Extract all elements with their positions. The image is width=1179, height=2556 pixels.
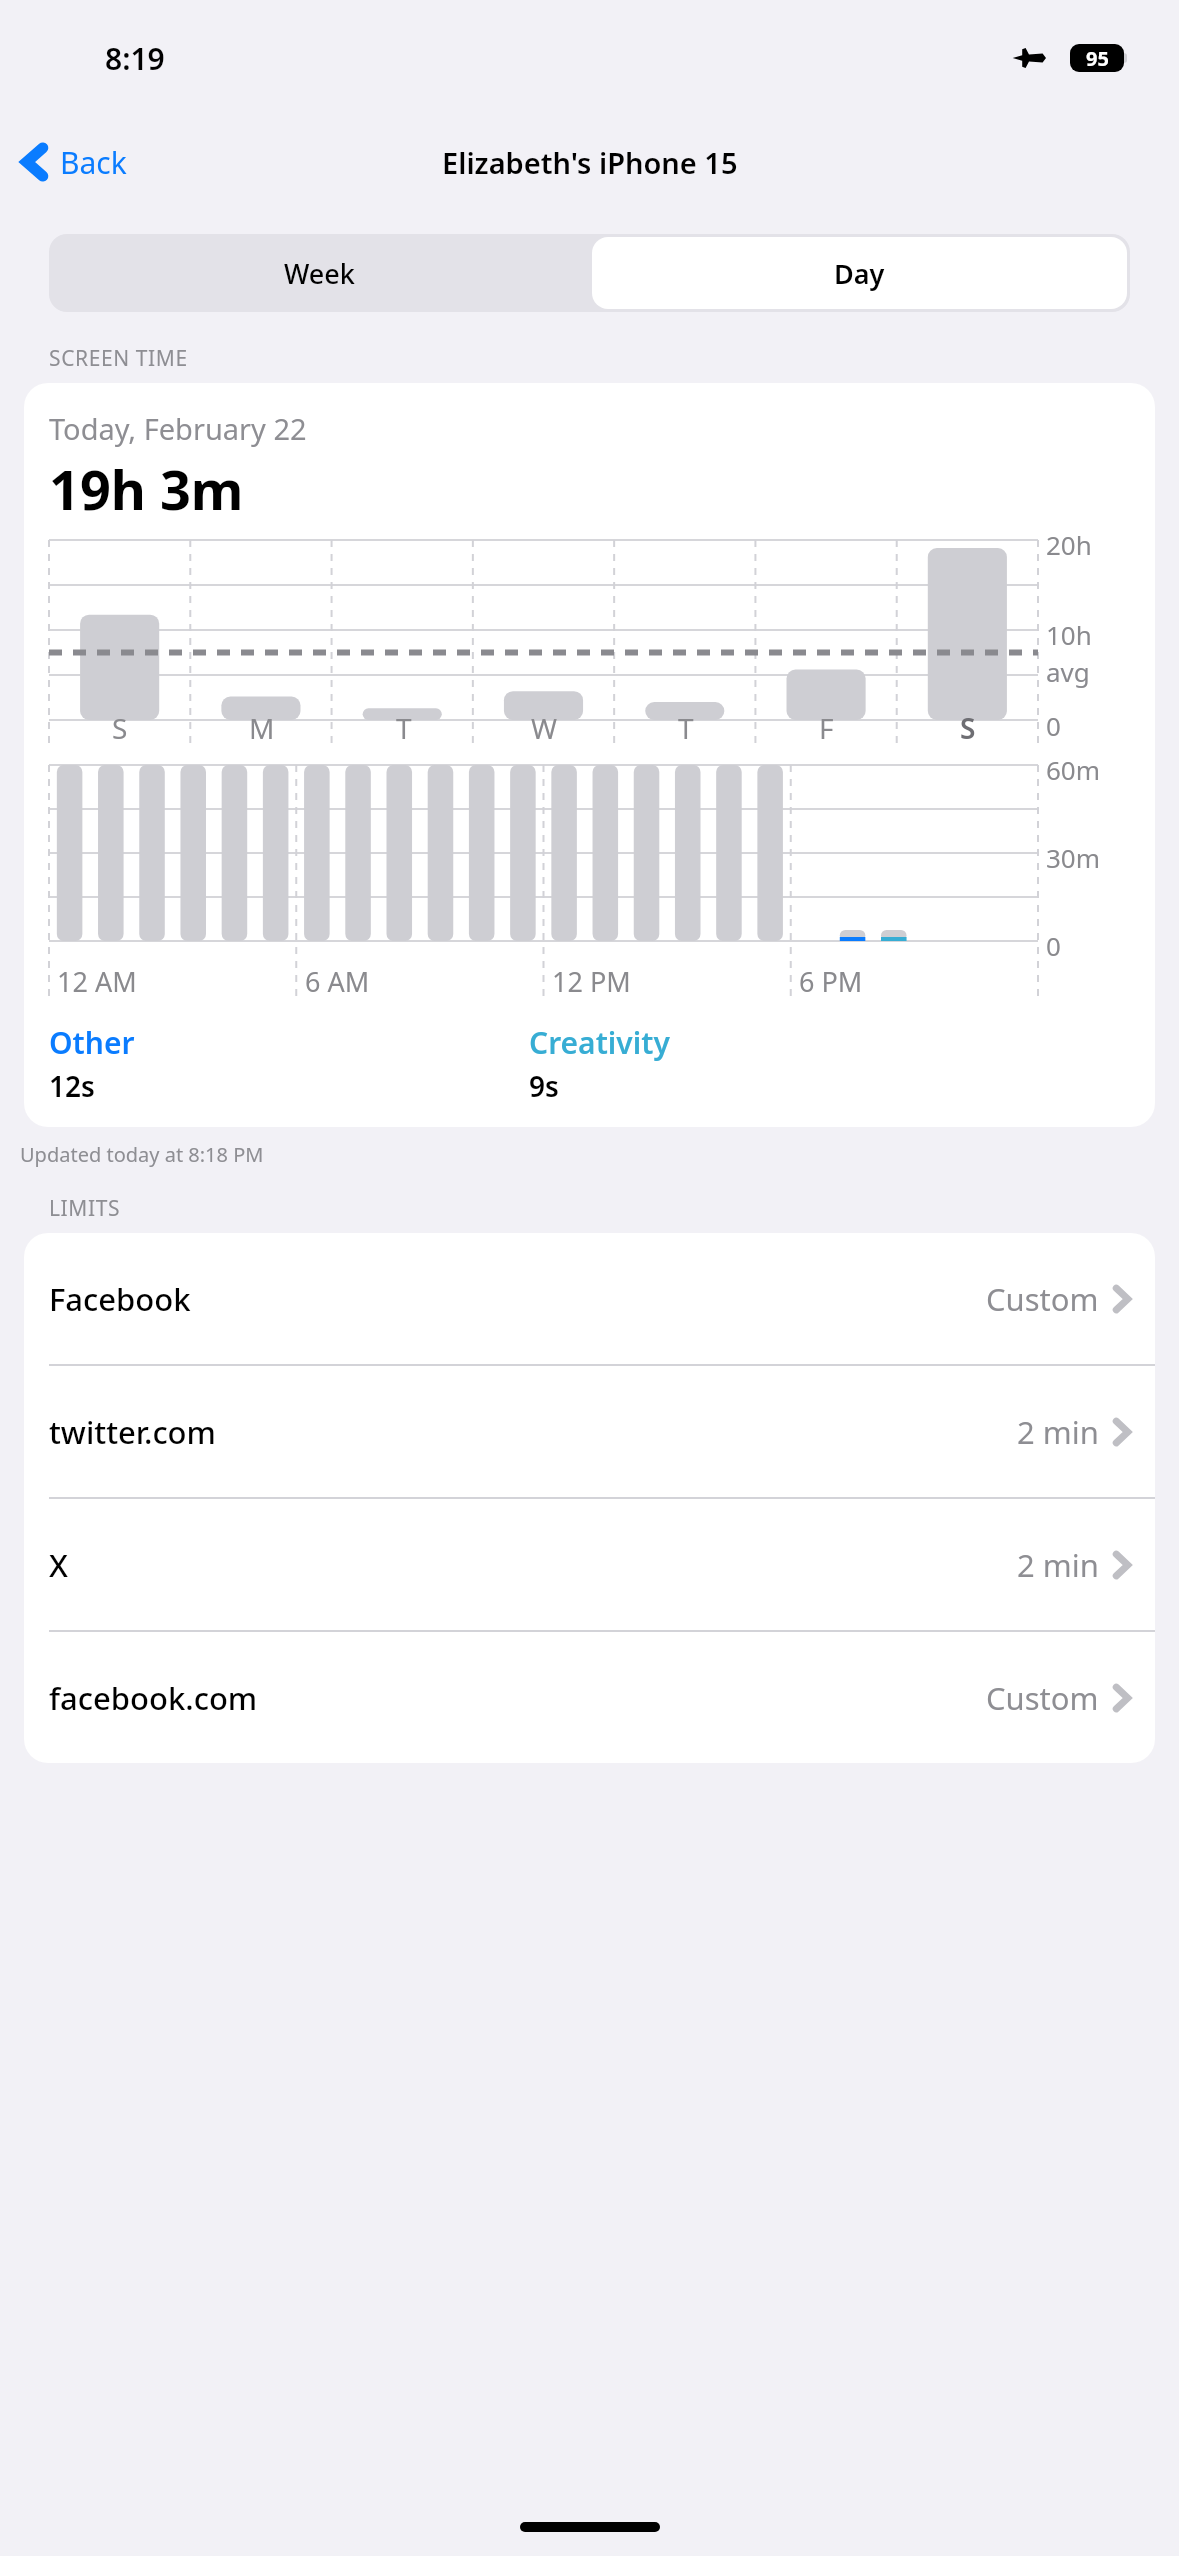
staticText: S xyxy=(112,709,128,747)
staticText: 30m xyxy=(1046,840,1101,875)
staticText: 9s xyxy=(529,1067,559,1105)
staticText: Updated today at 8:18 PM xyxy=(20,1141,264,1168)
staticText: 6 AM xyxy=(305,963,370,1000)
staticText: 2 min xyxy=(1017,1544,1099,1586)
button[interactable]: Facebook xyxy=(24,1233,1155,1364)
staticText: Day xyxy=(834,255,885,292)
staticText: Other xyxy=(49,1022,135,1063)
staticText: X xyxy=(49,1544,68,1586)
staticText: 12s xyxy=(49,1067,95,1105)
staticText: W xyxy=(531,709,558,747)
staticText: S xyxy=(960,709,976,747)
staticText: Custom xyxy=(986,1278,1099,1320)
staticText: twitter.com xyxy=(49,1411,216,1453)
staticText: facebook.com xyxy=(49,1677,258,1719)
button[interactable]: Day xyxy=(592,237,1127,309)
staticText: Creativity xyxy=(529,1022,670,1063)
staticText: 0 xyxy=(1046,708,1061,743)
staticText: 6 PM xyxy=(799,963,863,1000)
staticText: 20h xyxy=(1046,527,1092,562)
staticText: LIMITS xyxy=(49,1194,121,1223)
staticText: 12 PM xyxy=(552,963,631,1000)
button[interactable]: X xyxy=(24,1499,1155,1630)
button[interactable]: twitter.com xyxy=(24,1366,1155,1497)
staticText: avg xyxy=(1046,654,1090,689)
staticText: Back xyxy=(60,142,127,183)
staticText: Elizabeth's iPhone 15 xyxy=(442,143,738,182)
staticText: 95 xyxy=(1086,45,1109,72)
staticText: Facebook xyxy=(49,1278,191,1320)
staticText: 10h xyxy=(1046,617,1092,652)
staticText: SCREEN TIME xyxy=(49,344,188,373)
staticText: 12 AM xyxy=(57,963,137,1000)
staticText: Week xyxy=(284,255,355,292)
button[interactable]: Week xyxy=(49,234,589,312)
button[interactable]: Today, February 22 xyxy=(24,383,1155,1127)
staticText: 2 min xyxy=(1017,1411,1099,1453)
staticText: Custom xyxy=(986,1677,1099,1719)
button[interactable]: Back xyxy=(0,130,141,194)
staticText: M xyxy=(249,709,275,747)
staticText: T xyxy=(678,709,694,747)
button[interactable]: facebook.com xyxy=(24,1632,1155,1763)
staticText: T xyxy=(396,709,412,747)
staticText: Today, February 22 xyxy=(49,409,307,448)
staticText: 0 xyxy=(1046,928,1061,963)
staticText: 8:19 xyxy=(105,38,165,79)
staticText: 19h 3m xyxy=(49,452,244,526)
staticText: 60m xyxy=(1046,752,1101,787)
staticText: F xyxy=(819,709,834,747)
